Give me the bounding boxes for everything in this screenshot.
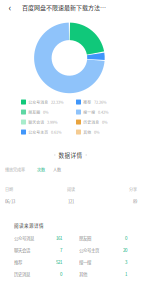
staticText: 阅读 [67, 186, 75, 192]
staticText: 22.33% [51, 99, 64, 105]
staticText: 3.99% [47, 119, 58, 125]
staticText: 公众号主页 [79, 247, 99, 253]
staticText: 3 [125, 259, 127, 265]
staticText: 其他 [79, 271, 87, 277]
staticText: 人数 [53, 167, 61, 173]
staticText: ‹ [8, 1, 11, 14]
button[interactable]: Back [3, 1, 17, 14]
staticText: 06/13 [5, 198, 15, 204]
staticText: 推荐 [83, 99, 91, 105]
staticText: 0.42% [98, 109, 109, 115]
staticText: 日期 [5, 186, 13, 192]
staticText: 其他 [83, 129, 91, 135]
staticText: 分享 [129, 186, 137, 192]
staticText: 0% [94, 129, 100, 135]
staticText: 72.26% [94, 99, 107, 105]
staticText: 次数 [37, 167, 45, 173]
staticText: 89 [133, 198, 137, 204]
staticText: 百度网盘不限速最新下载方法… [22, 3, 106, 12]
staticText: 历史消息 [83, 119, 99, 125]
staticText: 播放完成率 [5, 167, 25, 173]
staticText: 公众号消息 [14, 235, 34, 241]
staticText: 20 [123, 247, 127, 253]
staticText: 0.61% [51, 129, 62, 135]
staticText: 搜一搜 [79, 259, 91, 265]
staticText: 数据详情 [58, 151, 82, 159]
button[interactable]: 人数 [51, 166, 62, 174]
staticText: 7 [60, 247, 62, 253]
staticText: 聊天会话 [14, 247, 30, 253]
staticText: 朋友圈 [79, 235, 91, 241]
staticText: 0% [102, 119, 108, 125]
staticText: 0% [43, 109, 49, 115]
staticText: 0 [60, 271, 62, 277]
staticText: 推荐 [14, 259, 22, 265]
staticText: 121 [68, 198, 74, 204]
staticText: 朋友圈 [28, 109, 40, 115]
staticText: 公众号消息 [28, 99, 48, 105]
button[interactable]: 次数 [35, 166, 46, 174]
staticText: 聊天会话 [28, 119, 44, 125]
staticText: 历史消息 [14, 271, 30, 277]
staticText: 1 [125, 271, 127, 277]
staticText: 搜一搜 [83, 109, 95, 115]
staticText: 521 [56, 259, 62, 265]
staticText: 公众号主页 [28, 129, 48, 135]
staticText: 阅读来源详情 [14, 222, 44, 229]
staticText: 0 [125, 235, 127, 241]
staticText: 161 [56, 235, 62, 241]
